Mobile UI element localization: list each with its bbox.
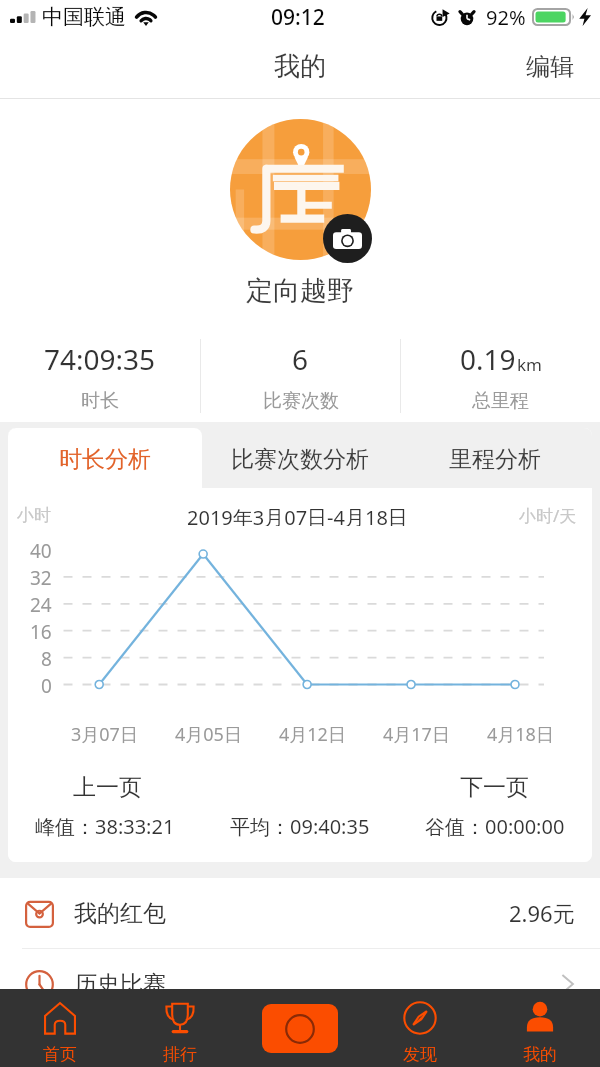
staticText: 24	[30, 592, 52, 618]
staticText: 2019年3月07日-4月18日	[187, 504, 408, 526]
button[interactable]: 我的	[480, 989, 600, 1067]
staticText: 时长分析	[59, 445, 151, 474]
staticText: 4月18日	[487, 722, 554, 744]
button[interactable]: 6	[201, 336, 400, 416]
staticText: 2.96元	[509, 898, 575, 928]
staticText: 编辑	[526, 52, 574, 82]
staticText: 我的	[523, 1044, 557, 1065]
button[interactable]: Start recording	[262, 1004, 338, 1053]
staticText: 上一页	[73, 773, 142, 802]
staticText: 40	[30, 538, 52, 564]
staticText: 小时	[17, 505, 51, 526]
staticText: 0.19	[460, 340, 516, 378]
staticText: 排行	[163, 1044, 197, 1065]
staticText: 我的	[274, 50, 326, 83]
staticText: km	[517, 353, 542, 376]
button[interactable]: 里程分析	[397, 428, 592, 488]
staticText: 0	[41, 673, 52, 699]
staticText: 4月05日	[175, 722, 242, 744]
button[interactable]: 0.19	[401, 336, 600, 416]
button[interactable]: 编辑	[504, 34, 600, 99]
staticText: 小时/天	[519, 504, 577, 526]
button[interactable]: 上一页	[47, 770, 167, 804]
staticText: 09:12	[271, 3, 325, 32]
staticText: 16	[30, 619, 52, 645]
staticText: 峰值：38:33:21	[35, 813, 175, 840]
staticText: 首页	[43, 1044, 77, 1065]
staticText: 平均：09:40:35	[230, 813, 370, 840]
staticText: 6	[292, 340, 309, 378]
staticText: 我的红包	[74, 899, 166, 928]
staticText: 3月07日	[71, 722, 138, 744]
button[interactable]: 74:09:35	[0, 336, 200, 416]
staticText: 8	[41, 646, 52, 672]
button[interactable]: 我的红包	[0, 878, 600, 948]
staticText: 下一页	[460, 773, 529, 802]
staticText: 比赛次数分析	[231, 445, 369, 474]
staticText: 定向越野	[246, 274, 354, 308]
staticText: 里程分析	[449, 445, 541, 474]
staticText: 历史比赛	[74, 970, 166, 989]
staticText: 32	[30, 565, 52, 591]
staticText: 92%	[486, 4, 526, 31]
staticText: 谷值：00:00:00	[425, 813, 565, 840]
staticText: 比赛次数	[263, 389, 339, 413]
staticText: 时长	[81, 389, 119, 413]
button[interactable]: 比赛次数分析	[202, 428, 397, 488]
staticText: 发现	[403, 1044, 437, 1065]
button[interactable]: 时长分析	[8, 428, 202, 488]
button[interactable]: 历史比赛	[0, 949, 600, 989]
button[interactable]: 下一页	[434, 770, 554, 804]
staticText: 74:09:35	[44, 340, 156, 378]
button[interactable]: 首页	[0, 989, 120, 1067]
staticText: 总里程	[472, 389, 529, 413]
button[interactable]: Change avatar photo	[230, 119, 371, 260]
staticText: 4月17日	[383, 722, 450, 744]
button[interactable]: 排行	[120, 989, 240, 1067]
staticText: 中国联通	[42, 4, 126, 30]
button[interactable]: 发现	[360, 989, 480, 1067]
staticText: 4月12日	[279, 722, 346, 744]
